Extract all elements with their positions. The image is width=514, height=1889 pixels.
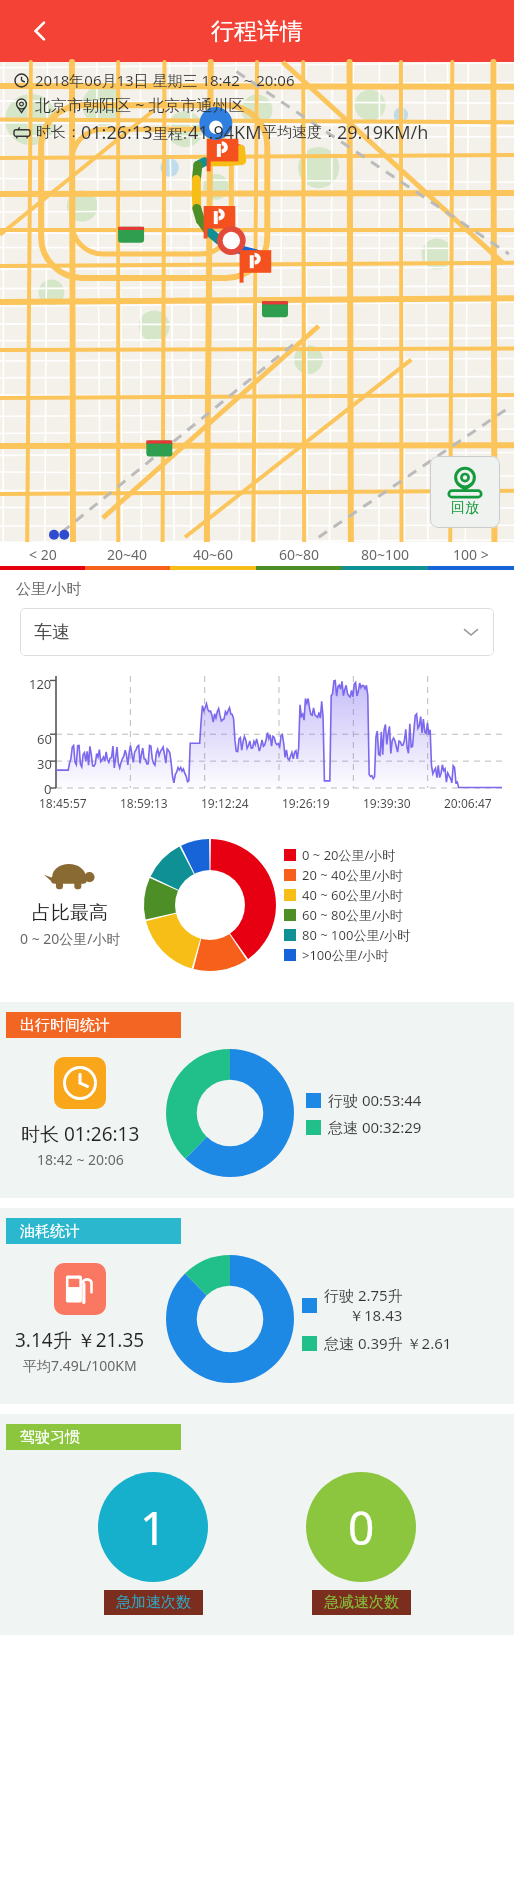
staticText: 里程:: [153, 123, 188, 143]
staticText: 60: [37, 730, 52, 748]
staticText: ￥18.43: [349, 1305, 403, 1325]
staticText: 急加速次数: [116, 1593, 191, 1612]
staticText: 行驶 00:53:44: [328, 1090, 422, 1110]
staticText: 0 ~ 20公里/小时: [302, 846, 396, 864]
button[interactable]: Back: [18, 9, 62, 53]
staticText: 80 ~ 100公里/小时: [302, 926, 411, 944]
staticText: 行程详情: [211, 17, 303, 46]
staticText: 40~60: [193, 545, 234, 564]
staticText: 19:26:19: [282, 795, 330, 811]
button[interactable]: 车速: [20, 608, 494, 656]
staticText: 20:06:47: [444, 795, 492, 811]
staticText: 30: [37, 755, 52, 773]
staticText: 平均速度：: [262, 123, 337, 142]
staticText: 80~100: [361, 545, 410, 564]
staticText: 120: [29, 675, 52, 693]
staticText: 20 ~ 40公里/小时: [302, 866, 403, 884]
staticText: 20~40: [107, 545, 148, 564]
staticText: 油耗统计: [20, 1222, 80, 1241]
staticText: 18:42 ~ 20:06: [37, 1150, 124, 1169]
staticText: 0: [348, 1496, 375, 1559]
staticText: 怠速 0.39升 ￥2.61: [324, 1333, 452, 1353]
button[interactable]: 0: [306, 1472, 416, 1615]
staticText: 1: [140, 1496, 167, 1559]
staticText: 29.19KM/h: [337, 120, 429, 145]
staticText: 18:45:57: [39, 795, 87, 811]
staticText: 回放: [451, 499, 479, 517]
staticText: 60~80: [279, 545, 320, 564]
staticText: 平均7.49L/100KM: [23, 1356, 137, 1375]
staticText: 0 ~ 20公里/小时: [20, 929, 121, 948]
staticText: 60 ~ 80公里/小时: [302, 906, 403, 924]
staticText: 出行时间统计: [20, 1016, 110, 1035]
staticText: 公里/小时: [16, 578, 82, 598]
staticText: >100公里/小时: [302, 946, 389, 964]
staticText: 01:26:13: [81, 120, 153, 145]
staticText: 3.14升 ￥21.35: [15, 1327, 145, 1353]
staticText: 怠速 00:32:29: [328, 1117, 422, 1137]
staticText: 北京市朝阳区 ~ 北京市通州区: [35, 94, 245, 116]
staticText: 急减速次数: [324, 1593, 399, 1612]
staticText: 18:59:13: [120, 795, 168, 811]
staticText: 驾驶习惯: [20, 1428, 80, 1447]
staticText: < 20: [29, 545, 57, 564]
staticText: 行驶 2.75升: [324, 1285, 403, 1305]
staticText: 时长：: [36, 123, 81, 142]
staticText: 40 ~ 60公里/小时: [302, 886, 403, 904]
staticText: 时长 01:26:13: [21, 1121, 140, 1147]
button[interactable]: 1: [98, 1472, 208, 1615]
button[interactable]: 回放: [430, 456, 500, 528]
staticText: 2018年06月13日 星期三 18:42 ~ 20:06: [35, 70, 295, 90]
staticText: 0: [44, 780, 52, 794]
staticText: 19:39:30: [363, 795, 411, 811]
staticText: 41.94KM: [188, 120, 262, 145]
staticText: 车速: [34, 621, 70, 644]
staticText: 100 >: [453, 545, 489, 564]
staticText: 占比最高: [32, 901, 108, 925]
staticText: 19:12:24: [201, 795, 249, 811]
